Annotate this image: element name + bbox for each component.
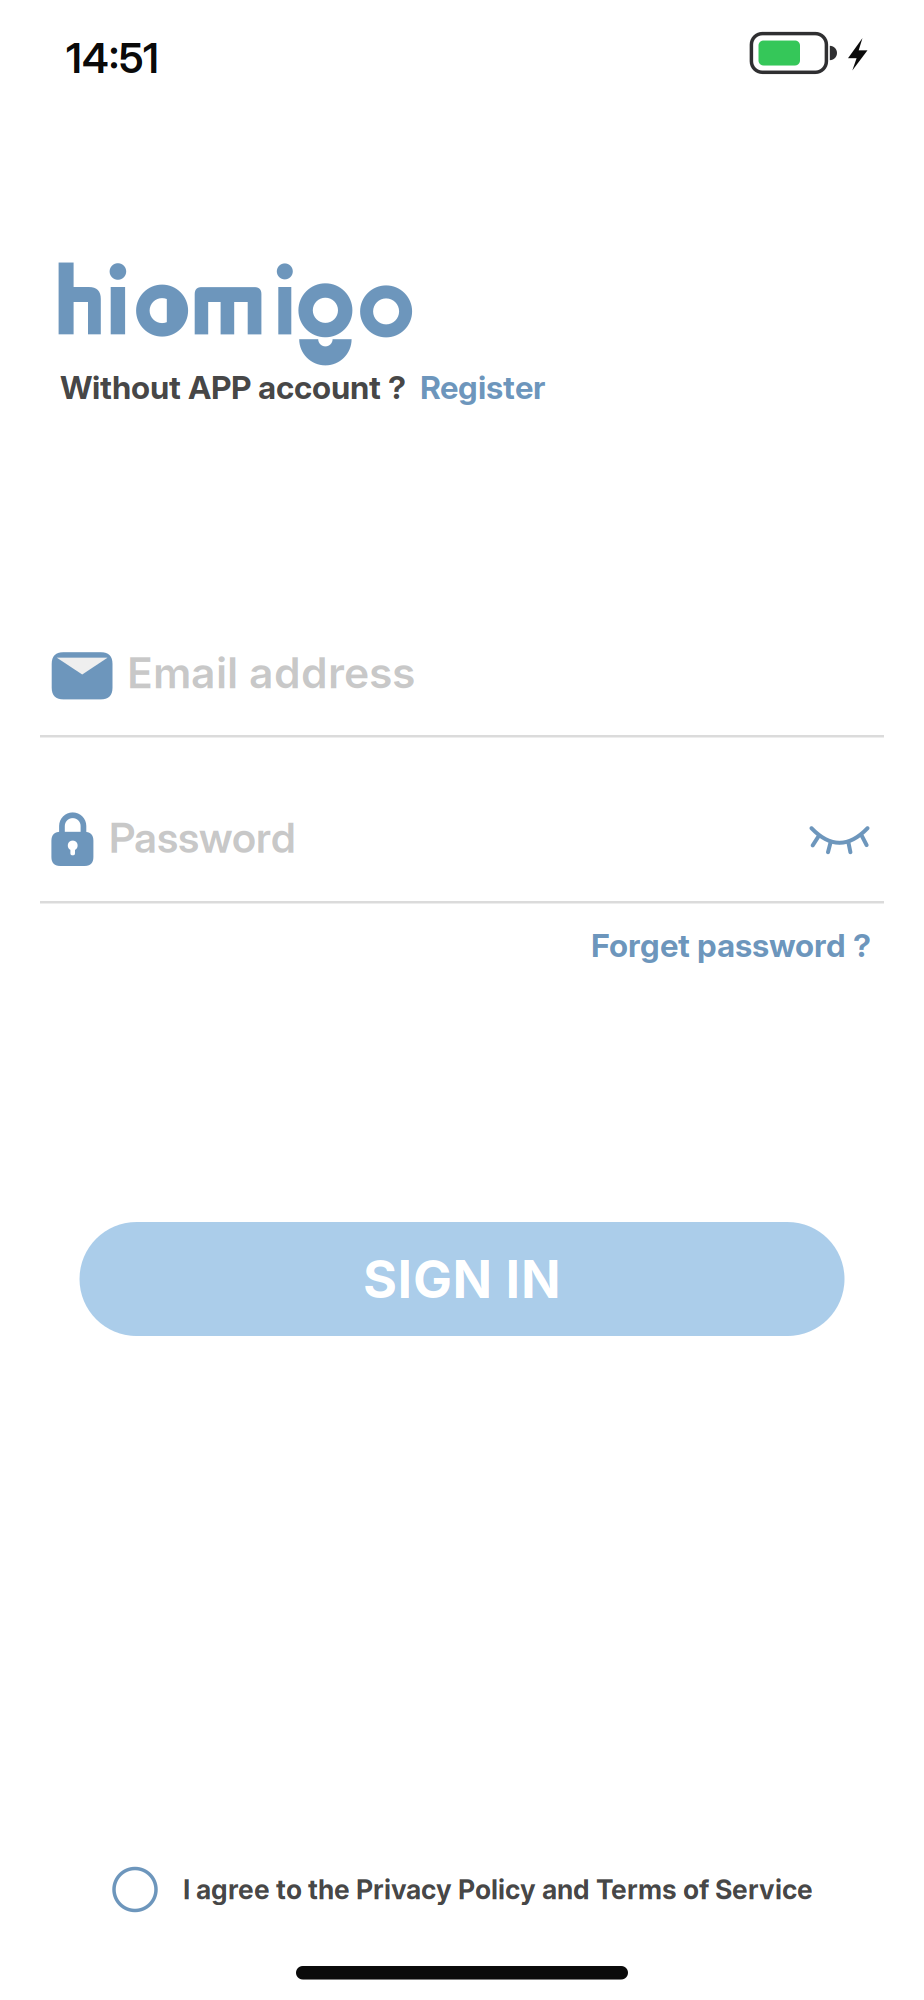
staticText: Register bbox=[420, 368, 545, 407]
staticText: SIGN IN bbox=[363, 1247, 561, 1310]
staticText: Without APP account ? bbox=[60, 368, 406, 407]
staticText: Forget password ? bbox=[591, 926, 871, 965]
button[interactable]: Register bbox=[420, 368, 545, 407]
button[interactable]: Show password bbox=[807, 820, 871, 860]
button[interactable]: Forget password ? bbox=[591, 926, 871, 965]
button[interactable]: SIGN IN bbox=[79, 1222, 844, 1336]
staticText: Password bbox=[109, 812, 296, 863]
staticText: 14:51 bbox=[66, 33, 159, 83]
staticText: I agree to the Privacy Policy and Terms … bbox=[183, 1873, 813, 1906]
button[interactable]: I agree to the Privacy Policy and Terms … bbox=[114, 1868, 813, 1910]
staticText: Email address bbox=[127, 647, 415, 699]
